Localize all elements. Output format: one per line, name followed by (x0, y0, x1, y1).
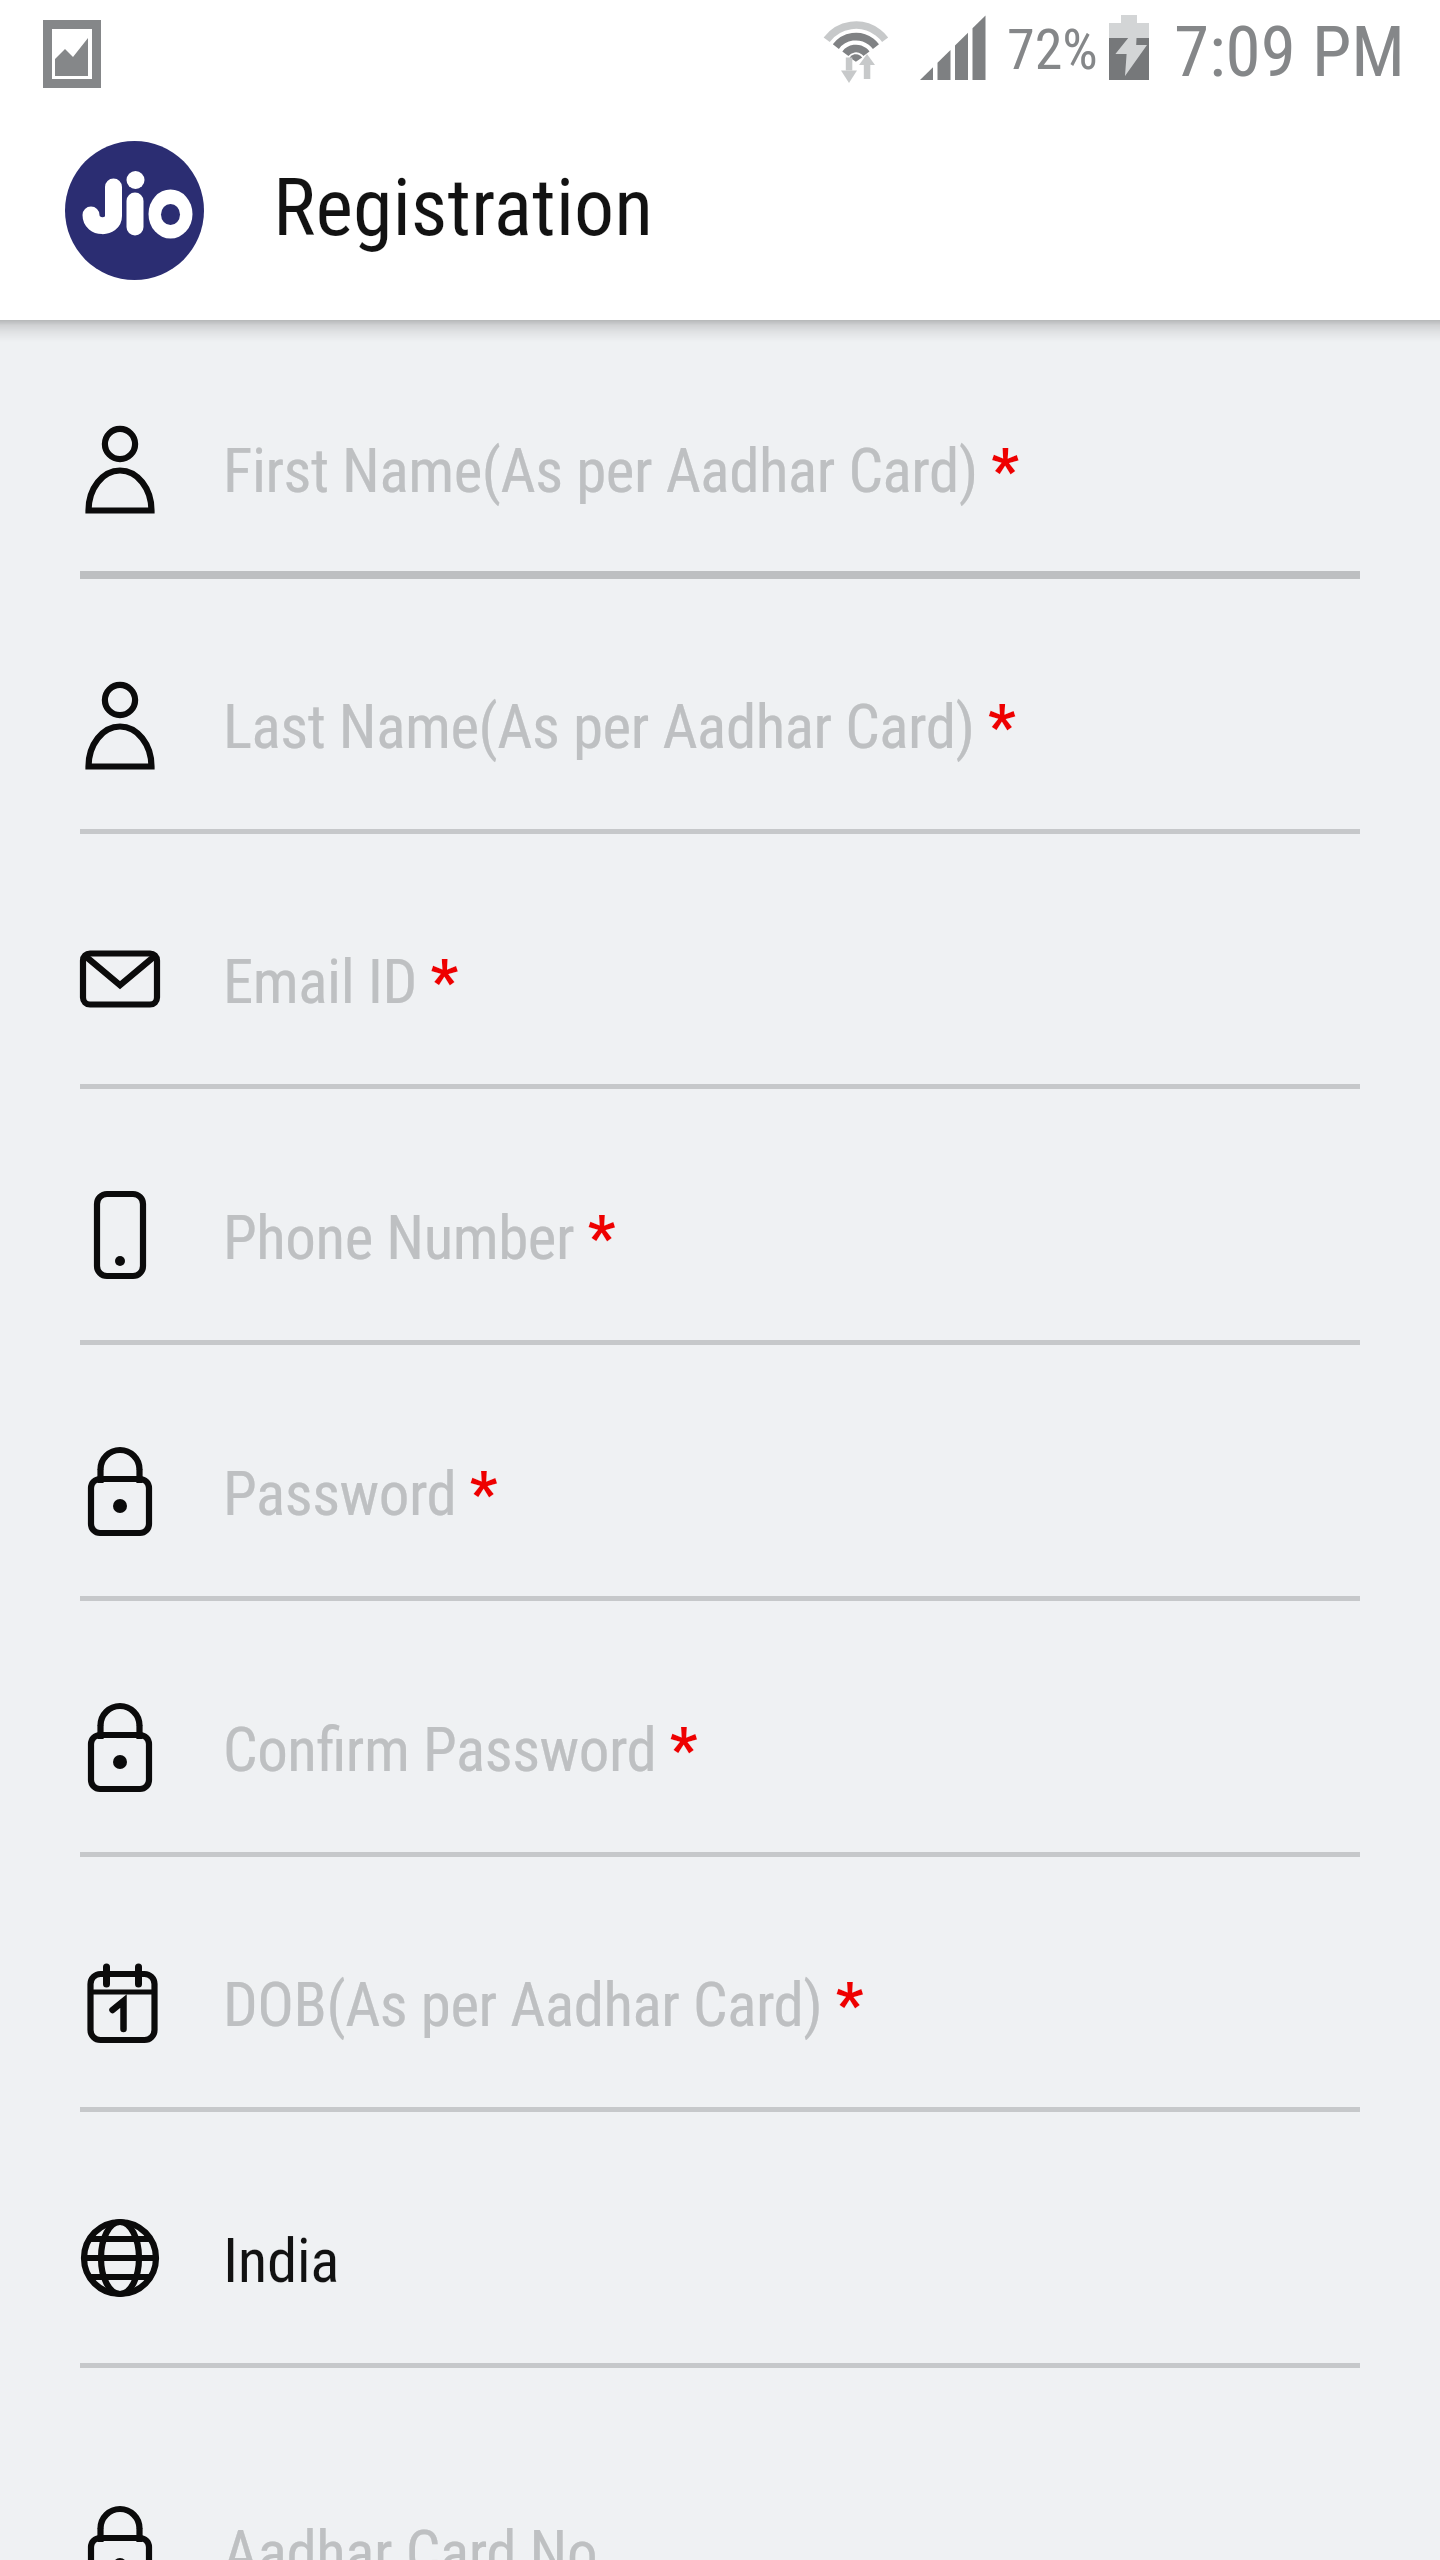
staticText: 7:09 PM (1174, 10, 1405, 93)
button[interactable]: Email ID * (0, 875, 1440, 1089)
staticText: 72% (1007, 17, 1098, 83)
staticText: Confirm Password * (223, 1714, 698, 1785)
button[interactable]: Confirm Password * (0, 1643, 1440, 1857)
button[interactable]: Aadhar Card No (0, 2446, 1440, 2560)
button[interactable]: Password * (0, 1387, 1440, 1601)
button[interactable]: First Name(As per Aadhar Card) * (0, 364, 1440, 579)
staticText: DOB(As per Aadhar Card) * (223, 1969, 864, 2040)
staticText: Aadhar Card No (223, 2517, 598, 2560)
button[interactable]: DOB(As per Aadhar Card) * (0, 1898, 1440, 2112)
staticText: Last Name(As per Aadhar Card) * (223, 691, 1016, 762)
button[interactable]: Last Name(As per Aadhar Card) * (0, 620, 1440, 834)
button[interactable]: Jio (65, 141, 204, 280)
staticText: Email ID * (223, 946, 458, 1017)
button[interactable]: India (0, 2154, 1440, 2368)
staticText: Registration (273, 161, 653, 255)
staticText: India (223, 2225, 340, 2296)
button[interactable]: Phone Number * (0, 1131, 1440, 1345)
staticText: Phone Number * (223, 1202, 615, 1273)
staticText: First Name(As per Aadhar Card) * (223, 435, 1019, 506)
staticText: Password * (223, 1458, 498, 1529)
other: Screenshot (43, 20, 101, 88)
